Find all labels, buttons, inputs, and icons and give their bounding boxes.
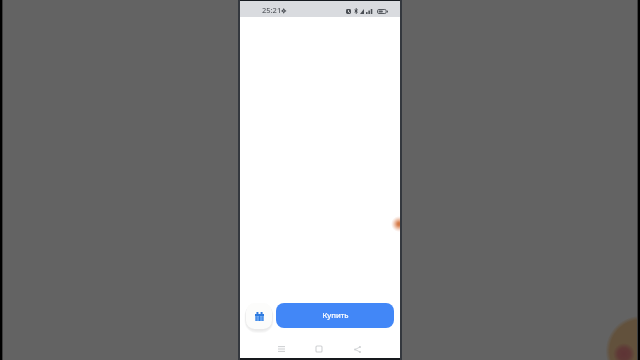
button[interactable]: Gift [246,303,272,329]
button[interactable]: Share [350,342,364,356]
staticText: 25:21 [262,5,282,15]
button[interactable]: Recent apps [274,342,288,356]
button[interactable]: Home [312,342,326,356]
button[interactable]: Купить [276,303,394,328]
staticText: Купить [322,310,349,321]
